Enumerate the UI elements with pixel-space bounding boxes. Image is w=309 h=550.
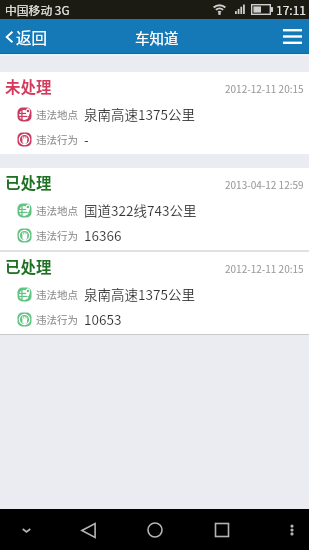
staticText: 违法行为 — [36, 228, 78, 243]
button[interactable]: 已处理 — [0, 252, 309, 334]
button[interactable]: Home — [138, 513, 172, 547]
staticText: 泉南高速1375公里 — [84, 104, 195, 124]
staticText: 违法地点 — [36, 287, 78, 302]
button[interactable]: Recents — [205, 513, 239, 547]
staticText: 违法地点 — [36, 107, 78, 122]
button[interactable]: 返回 — [0, 26, 56, 48]
staticText: 返回 — [16, 26, 48, 48]
staticText: 已处理 — [5, 255, 52, 277]
staticText: 车知道 — [135, 27, 179, 48]
staticText: - — [84, 129, 89, 149]
button[interactable]: Menu — [273, 21, 309, 52]
staticText: 2012-12-11 20:15 — [225, 81, 304, 95]
button[interactable]: Back — [71, 513, 105, 547]
staticText: 2013-04-12 12:59 — [225, 177, 304, 191]
staticText: 已处理 — [5, 171, 52, 193]
button[interactable]: 已处理 — [0, 168, 309, 250]
staticText: 2012-12-11 20:15 — [225, 261, 304, 275]
staticText: 国道322线743公里 — [84, 200, 197, 220]
button[interactable]: 未处理 — [0, 72, 309, 154]
staticText: 未处理 — [5, 75, 52, 97]
staticText: 泉南高速1375公里 — [84, 284, 195, 304]
staticText: 17:11 — [276, 1, 306, 18]
staticText: 10653 — [84, 309, 122, 329]
staticText: 违法地点 — [36, 203, 78, 218]
staticText: 中国移动 3G — [5, 1, 70, 18]
staticText: 16366 — [84, 225, 122, 245]
button[interactable]: Hide keyboard — [12, 516, 40, 544]
staticText: 违法行为 — [36, 132, 78, 147]
button[interactable]: More options — [278, 516, 306, 544]
staticText: 违法行为 — [36, 312, 78, 327]
